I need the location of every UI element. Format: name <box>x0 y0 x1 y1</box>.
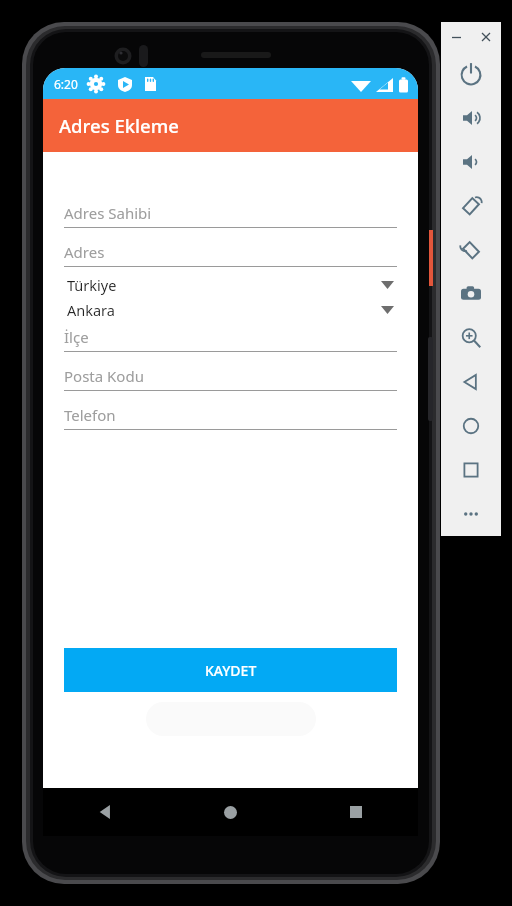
staticText: Adres <box>64 242 105 262</box>
other: Open dropdown <box>381 306 394 314</box>
button[interactable]: Back <box>43 788 168 836</box>
button[interactable]: Volume up <box>441 96 501 140</box>
staticText: KAYDET <box>205 661 257 680</box>
button[interactable]: Rotate left <box>441 184 501 228</box>
staticText: Telefon <box>64 405 116 425</box>
button[interactable]: Adres <box>64 238 397 267</box>
staticText: Adres Sahibi <box>64 203 152 223</box>
button[interactable]: Home <box>168 788 293 836</box>
button[interactable]: Adres Sahibi <box>64 199 397 228</box>
staticText: 6:20 <box>54 76 78 92</box>
button[interactable]: Telefon <box>64 401 397 430</box>
button[interactable]: More <box>441 492 501 536</box>
button[interactable]: Posta Kodu <box>64 362 397 391</box>
staticText: Posta Kodu <box>64 366 144 386</box>
staticText: Türkiye <box>67 275 381 295</box>
staticText: İlçe <box>64 327 89 347</box>
button[interactable]: Minimize <box>441 22 471 52</box>
button[interactable]: Ankara <box>67 297 394 322</box>
button[interactable]: Power <box>441 52 501 96</box>
button[interactable]: Rotate right <box>441 228 501 272</box>
button[interactable]: Overview <box>441 448 501 492</box>
button[interactable]: İlçe <box>64 323 397 352</box>
button[interactable]: KAYDET <box>64 648 397 692</box>
staticText: Adres Ekleme <box>59 113 179 138</box>
button[interactable]: Close <box>471 22 501 52</box>
button[interactable]: Türkiye <box>67 272 394 297</box>
button[interactable]: Take screenshot <box>441 272 501 316</box>
other: Open dropdown <box>381 281 394 289</box>
button[interactable]: Home <box>441 404 501 448</box>
button[interactable]: Volume down <box>441 140 501 184</box>
staticText: Ankara <box>67 300 381 320</box>
button[interactable]: Recent apps <box>293 788 418 836</box>
button[interactable]: Zoom <box>441 316 501 360</box>
button[interactable]: Back <box>441 360 501 404</box>
